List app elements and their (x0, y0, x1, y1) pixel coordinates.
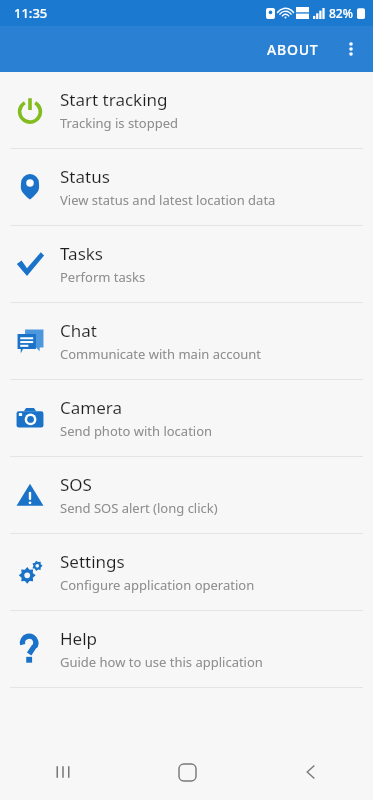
staticText: 11:35 (14, 4, 48, 22)
staticText: Camera (60, 396, 122, 419)
button[interactable]: Tasks (0, 226, 373, 302)
staticText: Chat (60, 319, 97, 342)
staticText: Tasks (60, 242, 103, 265)
staticText: Configure application operation (60, 576, 255, 594)
button[interactable]: More options (329, 27, 373, 71)
staticText: Start tracking (60, 88, 168, 111)
button[interactable]: Status (0, 149, 373, 225)
button[interactable]: Camera (0, 380, 373, 456)
button[interactable]: Settings (0, 534, 373, 610)
staticText: ABOUT (267, 40, 319, 59)
button[interactable]: ABOUT (257, 32, 329, 67)
staticText: View status and latest location data (60, 191, 276, 209)
staticText: Send photo with location (60, 422, 213, 440)
staticText: Guide how to use this application (60, 653, 263, 671)
staticText: Communicate with main account (60, 345, 262, 363)
button[interactable]: Recents (0, 744, 125, 800)
button[interactable]: Home (125, 744, 249, 800)
button[interactable]: Help (0, 611, 373, 687)
staticText: Perform tasks (60, 268, 146, 286)
button[interactable]: Chat (0, 303, 373, 379)
staticText: Tracking is stopped (60, 114, 178, 132)
staticText: Status (60, 165, 110, 188)
button[interactable]: Back (249, 744, 373, 800)
staticText: Send SOS alert (long click) (60, 499, 218, 517)
staticText: Help (60, 627, 98, 650)
staticText: SOS (60, 473, 92, 496)
button[interactable]: SOS (0, 457, 373, 533)
button[interactable]: Start tracking (0, 72, 373, 148)
staticText: 82% (329, 5, 353, 21)
staticText: Settings (60, 550, 125, 573)
